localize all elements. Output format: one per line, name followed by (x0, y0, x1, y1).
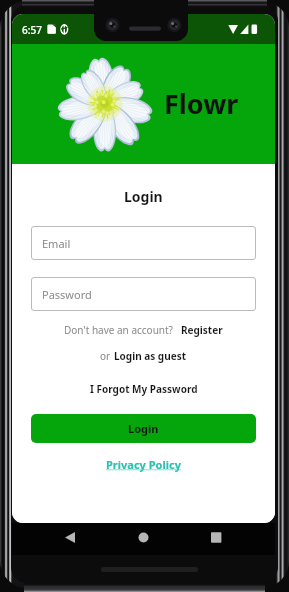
staticText: Email (42, 236, 71, 251)
button[interactable]: Register (180, 323, 224, 337)
staticText: I Forgot My Password (90, 382, 198, 396)
button[interactable]: Email (31, 226, 256, 260)
button[interactable]: Privacy Policy (104, 457, 183, 472)
staticText: Don't have an account? (64, 323, 173, 337)
staticText: Login (128, 421, 159, 436)
staticText: Flowr (164, 85, 239, 122)
staticText: Login as guest (114, 349, 187, 363)
staticText: Register (181, 323, 223, 337)
staticText: 6:57 (22, 23, 42, 37)
staticText: Privacy Policy (106, 457, 181, 472)
button[interactable]: Password (31, 277, 256, 311)
staticText: or (100, 349, 113, 363)
staticText: Password (42, 287, 92, 302)
button[interactable]: Login as guest (113, 349, 188, 363)
other: System navigation bar (12, 523, 275, 555)
button[interactable]: Login (31, 414, 256, 443)
staticText: Login (124, 187, 163, 206)
button[interactable]: I Forgot My Password (88, 382, 200, 396)
